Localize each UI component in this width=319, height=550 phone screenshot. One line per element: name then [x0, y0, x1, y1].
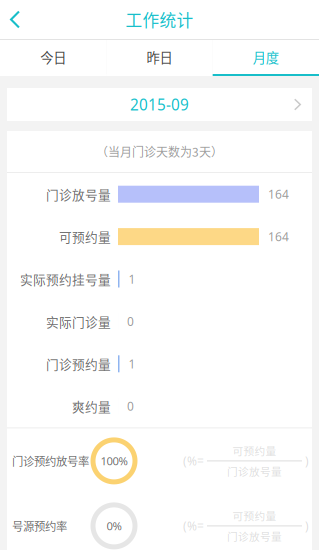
staticText: 门诊放号量 — [227, 463, 282, 479]
staticText: 工作统计 — [125, 7, 193, 31]
staticText: 0 — [127, 313, 134, 329]
staticText: 门诊放号量 — [46, 185, 111, 203]
staticText: 门诊预约放号率 — [12, 453, 89, 469]
staticText: 今日 — [40, 47, 66, 67]
staticText: 100% — [100, 453, 127, 469]
staticText: 号源预约率 — [12, 518, 67, 534]
staticText: 1 — [128, 271, 135, 287]
staticText: 1 — [128, 356, 135, 372]
staticText: 实际预约挂号量 — [20, 270, 111, 288]
button[interactable]: Back — [0, 0, 30, 39]
button[interactable]: 今日 — [0, 40, 106, 76]
button[interactable]: 2015-09 — [0, 88, 319, 121]
staticText: 0% — [106, 518, 121, 534]
staticText: (%= — [183, 518, 204, 534]
button[interactable]: 月度 — [213, 40, 319, 76]
staticText: 164 — [268, 228, 289, 245]
staticText: 实际门诊量 — [46, 312, 111, 330]
staticText: (%= — [183, 453, 204, 469]
staticText: 可预约量 — [232, 508, 276, 523]
staticText: 月度 — [253, 47, 279, 67]
staticText: 门诊放号量 — [227, 528, 282, 544]
staticText: 2015-09 — [130, 94, 189, 115]
staticText: （当月门诊天数为3天） — [96, 143, 223, 160]
staticText: 0 — [127, 398, 134, 414]
staticText: 昨日 — [146, 47, 172, 67]
staticText: 164 — [268, 186, 289, 202]
staticText: ) — [305, 453, 309, 469]
button[interactable]: 昨日 — [106, 40, 213, 76]
staticText: 可预约量 — [232, 443, 276, 458]
staticText: 可预约量 — [59, 227, 111, 246]
staticText: 爽约量 — [72, 397, 111, 415]
staticText: ) — [305, 518, 309, 534]
staticText: 门诊预约量 — [46, 355, 111, 373]
